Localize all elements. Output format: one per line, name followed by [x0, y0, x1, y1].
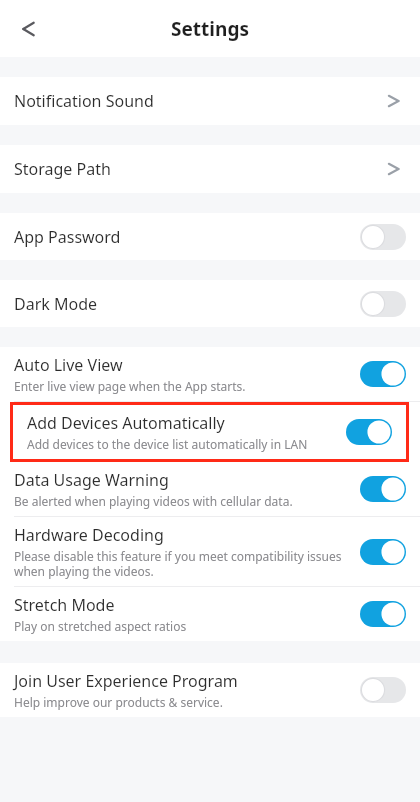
staticText: Stretch Mode — [14, 594, 115, 616]
staticText: Please disable this feature if you meet … — [14, 548, 350, 579]
staticText: Data Usage Warning — [14, 469, 169, 491]
button[interactable]: Stretch Mode — [0, 587, 420, 641]
staticText: Join User Experience Program — [14, 670, 238, 692]
button[interactable]: Toggle on — [360, 601, 406, 627]
button[interactable]: Dark Mode — [0, 280, 420, 327]
staticText: Be alerted when playing videos with cell… — [14, 493, 293, 509]
button[interactable]: Toggle off — [360, 224, 406, 250]
staticText: Storage Path — [14, 158, 384, 180]
button[interactable]: Auto Live View — [0, 347, 420, 401]
staticText: Help improve our products & service. — [14, 694, 223, 710]
staticText: Dark Mode — [14, 293, 98, 315]
staticText: Add devices to the device list automatic… — [27, 436, 308, 452]
staticText: Auto Live View — [14, 354, 123, 376]
staticText: Enter live view page when the App starts… — [14, 378, 246, 394]
staticText: Play on stretched aspect ratios — [14, 618, 187, 634]
button[interactable]: Toggle on — [360, 476, 406, 502]
button[interactable]: App Password — [0, 213, 420, 260]
button[interactable]: Toggle on — [346, 419, 392, 445]
staticText: Hardware Decoding — [14, 524, 164, 546]
button[interactable]: Toggle on — [360, 361, 406, 387]
staticText: Add Devices Automatically — [27, 412, 225, 434]
button[interactable]: Join User Experience Program — [0, 663, 420, 717]
button[interactable]: Add Devices Automatically — [13, 405, 406, 459]
button[interactable]: Back — [6, 7, 50, 51]
staticText: Settings — [171, 16, 249, 42]
button[interactable]: Data Usage Warning — [0, 462, 420, 516]
staticText: Notification Sound — [14, 90, 384, 112]
button[interactable]: Toggle on — [360, 539, 406, 565]
button[interactable]: Toggle off — [360, 291, 406, 317]
button[interactable]: Hardware Decoding — [0, 517, 420, 586]
button[interactable]: Storage Path — [0, 145, 420, 193]
button[interactable]: Notification Sound — [0, 77, 420, 125]
staticText: App Password — [14, 226, 121, 248]
button[interactable]: Toggle off — [360, 677, 406, 703]
